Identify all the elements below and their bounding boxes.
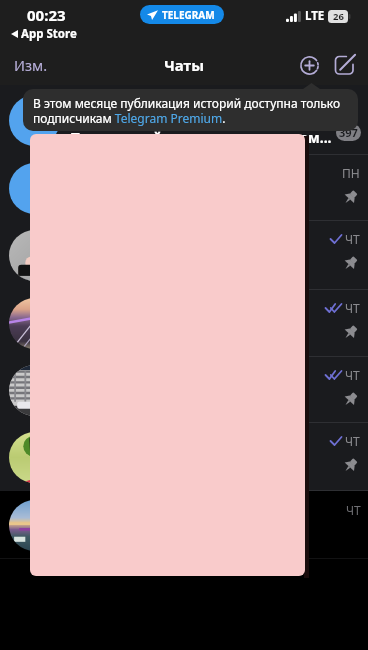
button[interactable]: ЧТ	[0, 290, 368, 357]
staticText: Изм.	[14, 55, 48, 75]
staticText: ЧТ	[346, 502, 361, 518]
staticText: ЧТ	[345, 231, 360, 247]
staticText: 26	[333, 10, 344, 23]
staticText: App Store	[21, 26, 77, 42]
staticText: 397	[339, 125, 358, 140]
staticText: ЧТ	[345, 433, 360, 449]
staticText: ЧТ	[345, 300, 360, 316]
button[interactable]: Канал публикаций	[0, 85, 368, 155]
staticText: ПН	[342, 165, 360, 181]
button[interactable]: ЧТ	[0, 221, 368, 290]
staticText: Подписывайтесь на наш телеграм...	[70, 128, 332, 147]
button[interactable]: Compose	[327, 48, 361, 82]
staticText: ЧТ	[345, 367, 360, 383]
button[interactable]: ЧТ	[0, 423, 368, 491]
button[interactable]: ЧТ	[0, 357, 368, 423]
button[interactable]: New story	[292, 48, 326, 82]
staticText: В этом месяце публикация историй доступн…	[33, 95, 348, 126]
button[interactable]: ПН	[0, 155, 368, 221]
staticText: TELEGRAM	[162, 8, 215, 22]
staticText: LTE	[305, 8, 325, 24]
staticText: Чаты	[164, 55, 204, 75]
button[interactable]: Изм.	[0, 49, 62, 81]
staticText: Канал публикаций	[70, 98, 217, 118]
staticText: 00:23	[27, 5, 66, 25]
